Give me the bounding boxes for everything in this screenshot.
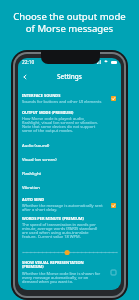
staticText: Flashlight	[22, 171, 42, 177]
button[interactable]: Vibration	[22, 181, 118, 195]
button[interactable]: INTERFACE SOUNDS	[22, 93, 118, 104]
staticText: Whether the message is automatically sen…	[22, 203, 104, 213]
button[interactable]: SHOW VISUAL REPRESENTATION (PREMIUM)	[22, 260, 118, 285]
staticText: WORDS PER MINUTE (PREMIUM)	[22, 216, 84, 221]
button[interactable]: Back	[19, 71, 31, 83]
staticText: INTERFACE SOUNDS	[22, 93, 61, 98]
staticText: The speed of transmission in words per m…	[22, 222, 104, 240]
staticText: Whether the Morse code line is shown for…	[22, 271, 104, 285]
button[interactable]: AUTO SEND	[22, 197, 118, 213]
button[interactable]: Flashlight	[22, 167, 118, 181]
staticText: How Morse code is played: audio, flashli…	[22, 116, 104, 134]
staticText: Choose the output mode of Morse messages	[0, 10, 139, 35]
staticText: Vibration	[22, 185, 40, 191]
staticText: Settings	[57, 72, 82, 81]
staticText: AUTO SEND	[22, 197, 45, 202]
staticText: OUTPUT MODE (PREMIUM)	[22, 110, 74, 115]
staticText: Sounds for buttons and other UI elements	[22, 99, 102, 104]
button[interactable]: Visual (on screen)	[22, 153, 118, 167]
button[interactable]: OUTPUT MODE (PREMIUM)	[22, 110, 118, 134]
staticText: SHOW VISUAL REPRESENTATION (PREMIUM)	[22, 260, 104, 270]
button[interactable]: WORDS PER MINUTE (PREMIUM)	[22, 216, 118, 240]
button[interactable]: Words per minute slider	[22, 249, 118, 256]
button[interactable]: Audio (sound)	[22, 139, 118, 153]
staticText: Audio (sound)	[22, 143, 50, 149]
staticText: 22:10	[22, 59, 35, 66]
staticText: Visual (on screen)	[22, 157, 57, 163]
